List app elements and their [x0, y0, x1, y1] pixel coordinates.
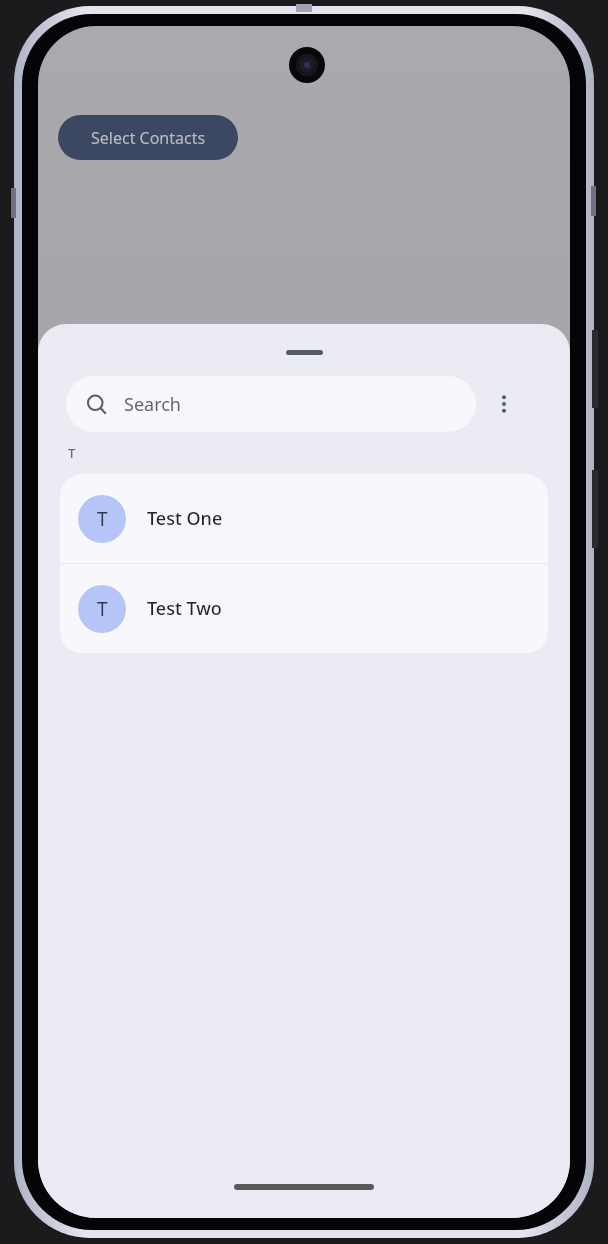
button[interactable]: More options: [480, 380, 528, 428]
button[interactable]: Drag handle: [286, 350, 323, 355]
staticText: Search: [124, 392, 181, 417]
staticText: T: [97, 596, 108, 622]
button[interactable]: Select Contacts: [58, 115, 238, 160]
button[interactable]: T: [60, 564, 548, 653]
staticText: T: [68, 444, 76, 462]
button[interactable]: T: [60, 474, 548, 563]
button[interactable]: Search: [66, 376, 476, 432]
staticText: Test Two: [147, 596, 222, 621]
staticText: T: [97, 506, 108, 532]
staticText: Test One: [147, 506, 223, 531]
staticText: Select Contacts: [91, 127, 206, 149]
